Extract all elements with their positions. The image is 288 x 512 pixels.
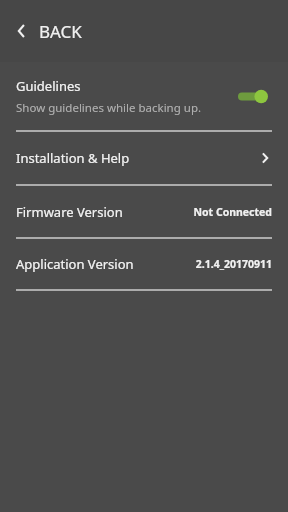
button[interactable]: Application Version xyxy=(0,239,288,289)
button[interactable]: Installation & Help xyxy=(0,132,288,184)
button[interactable]: Toggle guidelines xyxy=(234,84,272,109)
button[interactable]: Back xyxy=(0,0,288,62)
staticText: BACK xyxy=(39,20,82,43)
staticText: Installation & Help xyxy=(16,149,130,167)
staticText: Show guidelines while backing up. xyxy=(16,100,202,116)
staticText: 2.1.4_20170911 xyxy=(195,257,272,271)
staticText: Not Connected xyxy=(193,205,272,219)
staticText: Firmware Version xyxy=(16,203,123,221)
staticText: Application Version xyxy=(16,255,134,273)
button[interactable]: Guidelines xyxy=(0,62,288,130)
staticText: Guidelines xyxy=(16,77,81,95)
button[interactable]: Firmware Version xyxy=(0,186,288,237)
